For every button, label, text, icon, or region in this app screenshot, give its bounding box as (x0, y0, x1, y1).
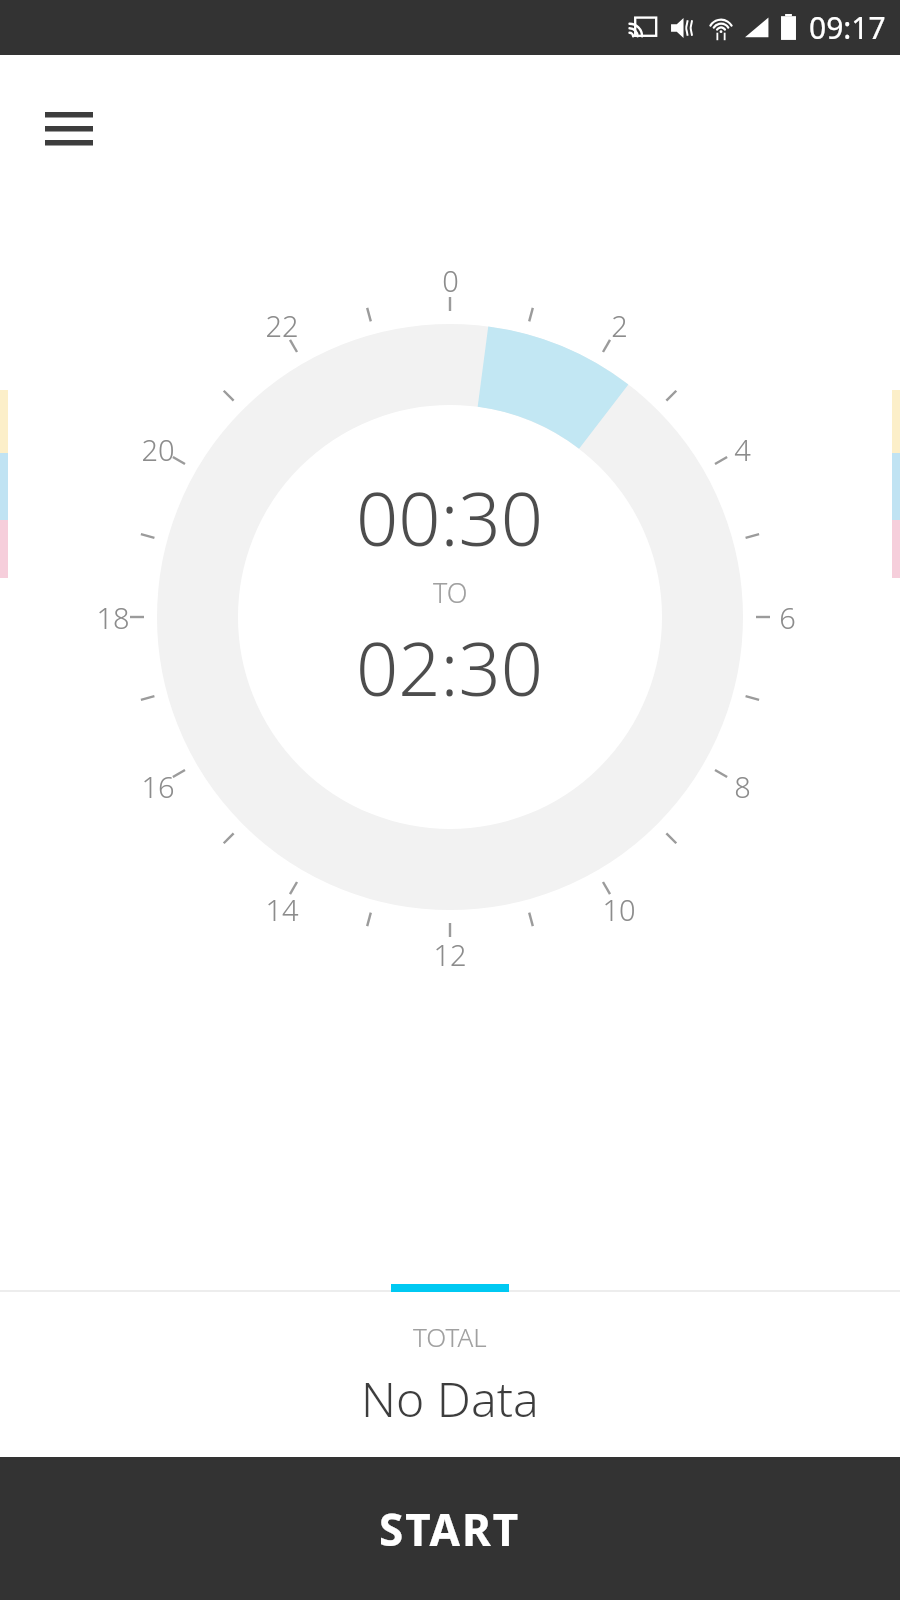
staticText: 0 (442, 261, 459, 300)
staticText: 8 (734, 767, 751, 806)
staticText: TO (433, 574, 468, 611)
staticText: 2 (611, 306, 628, 345)
staticText: 6 (779, 598, 796, 637)
button[interactable]: START (0, 1457, 900, 1600)
staticText: 00:30 (356, 467, 544, 568)
staticText: 22 (265, 306, 299, 345)
staticText: 09:17 (809, 7, 886, 48)
button[interactable]: 00:30 (356, 467, 544, 568)
staticText: 10 (602, 890, 636, 929)
button[interactable]: Menu (24, 86, 90, 152)
button[interactable]: 02:30 (356, 617, 544, 718)
staticText: 20 (141, 430, 175, 469)
staticText: TOTAL (413, 1319, 487, 1354)
button[interactable]: TOTAL (0, 1292, 900, 1457)
staticText: 14 (265, 890, 299, 929)
staticText: 12 (433, 935, 467, 974)
staticText: 4 (734, 430, 751, 469)
staticText: START (379, 1499, 521, 1559)
staticText: No Data (361, 1366, 539, 1431)
staticText: 18 (96, 598, 130, 637)
staticText: 16 (141, 767, 175, 806)
staticText: 02:30 (356, 617, 544, 718)
